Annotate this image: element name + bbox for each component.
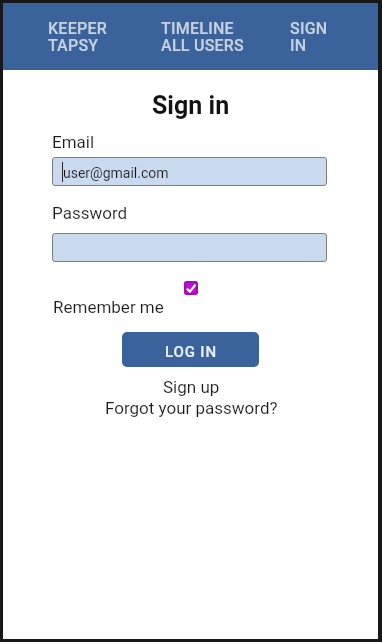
staticText: Password bbox=[52, 203, 128, 223]
staticText: Sign in bbox=[152, 91, 230, 120]
button[interactable] bbox=[38, 8, 156, 62]
staticText: ALL USERS bbox=[161, 36, 245, 55]
button[interactable]: Sign up bbox=[163, 372, 220, 392]
staticText: TAPSY bbox=[48, 36, 99, 55]
staticText: TIMELINE bbox=[161, 19, 234, 38]
button[interactable] bbox=[52, 233, 327, 262]
button[interactable] bbox=[151, 8, 259, 62]
staticText: KEEPER bbox=[48, 19, 107, 38]
button[interactable]: LOG IN bbox=[122, 332, 259, 367]
staticText: Sign up bbox=[163, 377, 220, 397]
staticText: SIGN bbox=[290, 19, 328, 38]
button[interactable]: user@gmail.com bbox=[52, 157, 327, 186]
staticText: user@gmail.com bbox=[63, 165, 169, 181]
staticText: Remember me bbox=[53, 297, 164, 317]
button[interactable] bbox=[279, 8, 343, 62]
button[interactable]: Forgot your password? bbox=[105, 393, 278, 413]
staticText: IN bbox=[290, 36, 307, 55]
button[interactable]: Remember me bbox=[48, 292, 159, 312]
button[interactable] bbox=[184, 281, 198, 295]
staticText: Email bbox=[52, 132, 95, 152]
staticText: LOG IN bbox=[165, 343, 217, 361]
staticText: Forgot your password? bbox=[105, 398, 278, 418]
